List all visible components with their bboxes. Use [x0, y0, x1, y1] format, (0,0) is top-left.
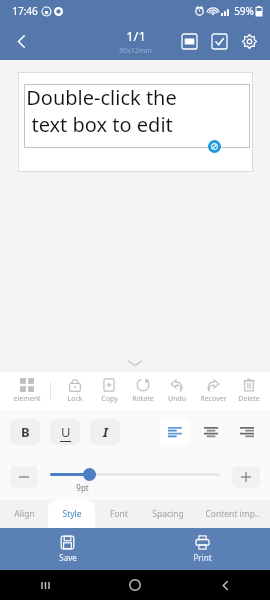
staticText: Undo — [168, 394, 186, 404]
button[interactable]: Select all — [204, 26, 234, 56]
button[interactable]: Content imp.. — [194, 500, 270, 528]
button[interactable]: Recover — [194, 372, 232, 410]
button[interactable]: Home — [90, 570, 180, 600]
staticText: 9pt — [76, 482, 89, 493]
button[interactable]: Back — [180, 570, 270, 600]
staticText: Lock — [67, 394, 83, 404]
button[interactable]: Lock — [58, 372, 92, 410]
staticText: Style — [62, 508, 82, 520]
staticText: 30x12mm — [119, 46, 152, 56]
staticText: Print — [193, 552, 212, 563]
staticText: Rotate — [132, 394, 154, 404]
staticText: Recover — [200, 394, 227, 404]
staticText: Save — [59, 552, 77, 563]
button[interactable]: Font — [95, 500, 142, 528]
button[interactable]: B — [10, 419, 40, 445]
staticText: Content imp.. — [205, 508, 260, 520]
staticText: element — [13, 394, 41, 404]
button[interactable]: Settings — [234, 26, 264, 56]
staticText: 17:46 — [12, 4, 38, 18]
button[interactable]: Align center — [196, 419, 226, 445]
other: Size slider — [83, 468, 96, 481]
staticText: Font — [110, 508, 128, 520]
button[interactable]: element — [4, 372, 50, 410]
staticText: B — [21, 423, 30, 441]
button[interactable]: Double-click the — [24, 84, 250, 148]
button[interactable]: Delete — [232, 372, 266, 410]
staticText: 59% — [234, 4, 254, 18]
button[interactable]: Back — [4, 24, 38, 58]
staticText: Spacing — [152, 508, 184, 520]
button[interactable]: Align right — [232, 419, 262, 445]
button[interactable]: Quantity — [174, 26, 204, 56]
button[interactable]: U — [50, 419, 80, 445]
button[interactable]: Undo — [160, 372, 194, 410]
button[interactable]: Decrease size — [10, 466, 38, 488]
staticText: Delete — [238, 394, 260, 404]
button[interactable]: Copy — [92, 372, 126, 410]
button[interactable]: Spacing — [142, 500, 194, 528]
button[interactable]: Print — [135, 528, 270, 570]
button[interactable]: Rotate — [126, 372, 160, 410]
staticText: U — [61, 423, 71, 441]
button[interactable]: I — [90, 419, 120, 445]
other: Rotate handle — [208, 140, 221, 153]
button[interactable]: Align left — [160, 419, 190, 445]
staticText: Double-click the — [26, 84, 177, 111]
staticText: Copy — [101, 394, 118, 404]
staticText: Align — [14, 508, 35, 520]
button[interactable]: Align — [0, 500, 48, 528]
button[interactable]: Increase size — [232, 466, 260, 488]
button[interactable] — [50, 473, 220, 476]
button[interactable]: Style — [48, 500, 95, 528]
staticText: 1/1 — [126, 27, 146, 45]
button[interactable]: Save — [0, 528, 135, 570]
staticText: I — [103, 423, 108, 441]
button[interactable]: Recent apps — [0, 570, 90, 600]
staticText: text box to edit — [26, 111, 173, 138]
